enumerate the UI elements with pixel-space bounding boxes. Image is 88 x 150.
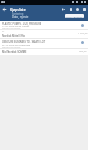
staticText: Mid Nordisk SOMME	[2, 50, 27, 53]
staticText: PLASTIC PUMPS - LUX, PRESSURE LIMPID	[2, 22, 48, 25]
staticText: Sortering	[12, 12, 24, 16]
button[interactable]: More options	[81, 5, 88, 13]
button[interactable]: Send	[60, 5, 67, 13]
staticText: 11-21-2018 09:46 Nordic Lake	[2, 24, 32, 27]
staticText: Signert av kunde	[2, 27, 21, 30]
staticText: Nordisk Mittel Effio Boxen	[2, 34, 32, 37]
staticText: Kjøpsliste	[10, 7, 26, 12]
staticText: OBSCURE BUSINESS TD - WASTE LOT	[2, 40, 46, 43]
button[interactable]: Back	[1, 6, 8, 13]
staticText: kr	[2, 30, 5, 33]
button[interactable]: Attachment	[81, 41, 84, 44]
staticText: 1 234,00	[78, 31, 88, 34]
button[interactable]: Attachment	[81, 24, 84, 27]
staticText: VELG PERIODE	[66, 15, 83, 18]
staticText: 980,00	[79, 49, 87, 52]
staticText: Dato, nyeste	[12, 15, 29, 19]
button[interactable]: Info	[74, 5, 81, 13]
button[interactable]: Delete	[67, 5, 74, 13]
button[interactable]: VELG PERIODE	[65, 14, 84, 18]
staticText: Signert av kunde	[2, 46, 21, 49]
staticText: 01-17-2018 05 Underside Draft	[2, 43, 32, 46]
